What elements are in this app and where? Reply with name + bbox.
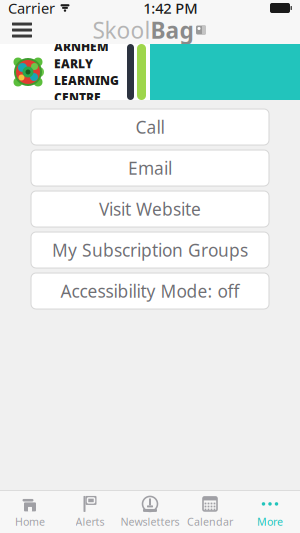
button[interactable]: Call [31,109,269,145]
staticText: EARLY [54,56,93,71]
button[interactable]: Newsletters [120,491,180,533]
staticText: Calendar [187,514,233,529]
staticText: Visit Website [99,197,201,220]
button[interactable]: Accessibility Mode: off [31,273,269,309]
staticText: Carrier [8,0,55,18]
button[interactable]: More [240,491,300,533]
staticText: 1:42 PM [143,0,197,18]
staticText: CENTRE [54,89,101,105]
staticText: More [257,514,283,529]
staticText: ARNHEM [54,39,109,54]
button[interactable]: My Subscription Groups [31,232,269,268]
staticText: My Subscription Groups [52,238,248,261]
button[interactable]: Alerts [60,491,120,533]
staticText: Newsletters [120,514,179,529]
staticText: Skool [92,15,150,45]
staticText: Bag [150,15,193,45]
staticText: Email [128,156,172,179]
button[interactable]: Calendar [180,491,240,533]
staticText: LEARNING [54,72,119,88]
staticText: Alerts [75,514,104,529]
staticText: Home [15,514,45,529]
button[interactable]: Menu [0,16,44,44]
staticText: Call [135,115,164,138]
staticText: Accessibility Mode: off [60,279,239,302]
button[interactable]: Home [0,491,60,533]
button[interactable]: Email [31,150,269,186]
button[interactable]: Visit Website [31,191,269,227]
